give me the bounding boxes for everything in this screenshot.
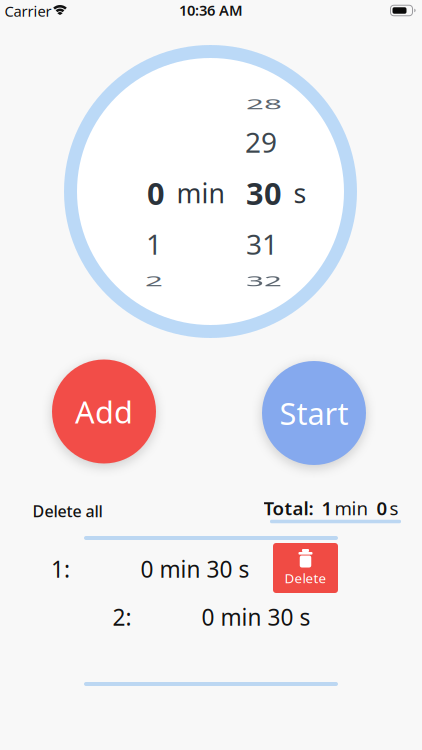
staticText: min	[334, 496, 368, 520]
staticText: Start	[279, 393, 348, 433]
button[interactable]: Delete all	[32, 500, 102, 522]
staticText: 31	[246, 225, 278, 263]
staticText: Delete	[284, 569, 326, 587]
staticText: 10:36 AM	[179, 0, 243, 20]
staticText: 1	[321, 496, 332, 520]
staticText: 0 min	[140, 554, 200, 584]
staticText: 0	[147, 173, 165, 213]
staticText: 30	[246, 173, 282, 213]
staticText: 30 s	[206, 554, 249, 584]
staticText: Total:	[263, 496, 313, 520]
button[interactable]: Delete	[273, 543, 338, 593]
staticText: 0 min	[201, 602, 261, 632]
staticText: 0	[376, 496, 387, 520]
staticText: 29	[245, 123, 277, 161]
staticText: Delete all	[32, 500, 102, 522]
staticText: min	[176, 175, 224, 211]
staticText: 28	[248, 85, 280, 122]
staticText: 32	[248, 262, 280, 299]
button[interactable]: Start	[262, 361, 366, 465]
button[interactable]: Add	[52, 359, 156, 463]
staticText: s	[293, 175, 306, 211]
staticText: 1	[146, 225, 162, 263]
staticText: 30 s	[267, 602, 310, 632]
staticText: s	[389, 496, 398, 520]
staticText: 2	[146, 262, 162, 299]
staticText: 2:	[112, 602, 131, 632]
staticText: Carrier	[4, 1, 51, 21]
staticText: 1:	[51, 554, 70, 584]
staticText: Add	[75, 391, 133, 432]
